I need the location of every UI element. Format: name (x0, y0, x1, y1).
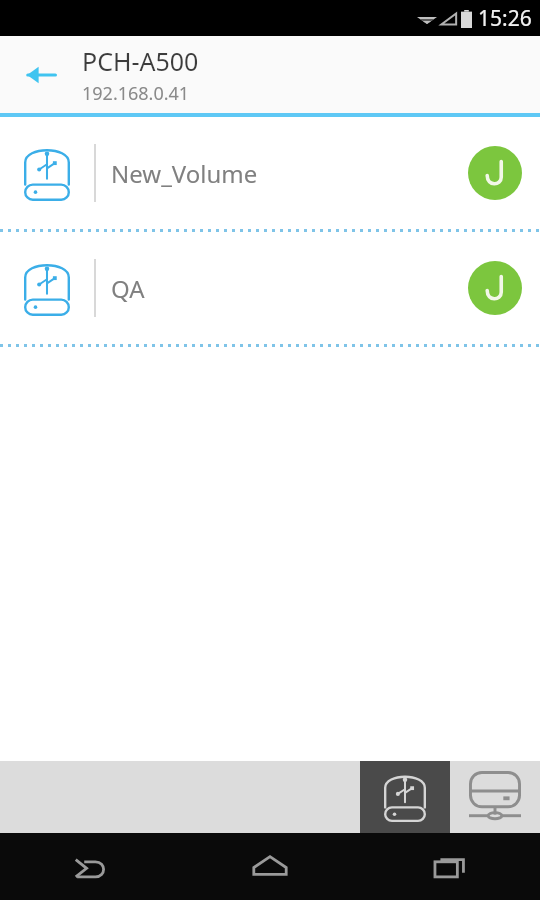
staticText: 192.168.0.41 (82, 81, 190, 106)
staticText: New_Volume (111, 157, 468, 190)
staticText: QA (111, 272, 468, 305)
button[interactable]: Eject (468, 261, 522, 315)
button[interactable]: New_Volume (0, 117, 540, 229)
staticText: 15:26 (478, 4, 532, 33)
button[interactable]: QA (0, 232, 540, 344)
button[interactable]: USB storage (360, 761, 450, 833)
staticText: PCH-A500 (82, 44, 199, 78)
button[interactable]: Recent apps (360, 833, 540, 900)
button[interactable]: Back (0, 36, 82, 113)
button[interactable]: Network storage (450, 761, 540, 833)
button[interactable]: Home (180, 833, 360, 900)
button[interactable]: Eject (468, 146, 522, 200)
button[interactable]: Back (0, 833, 180, 900)
